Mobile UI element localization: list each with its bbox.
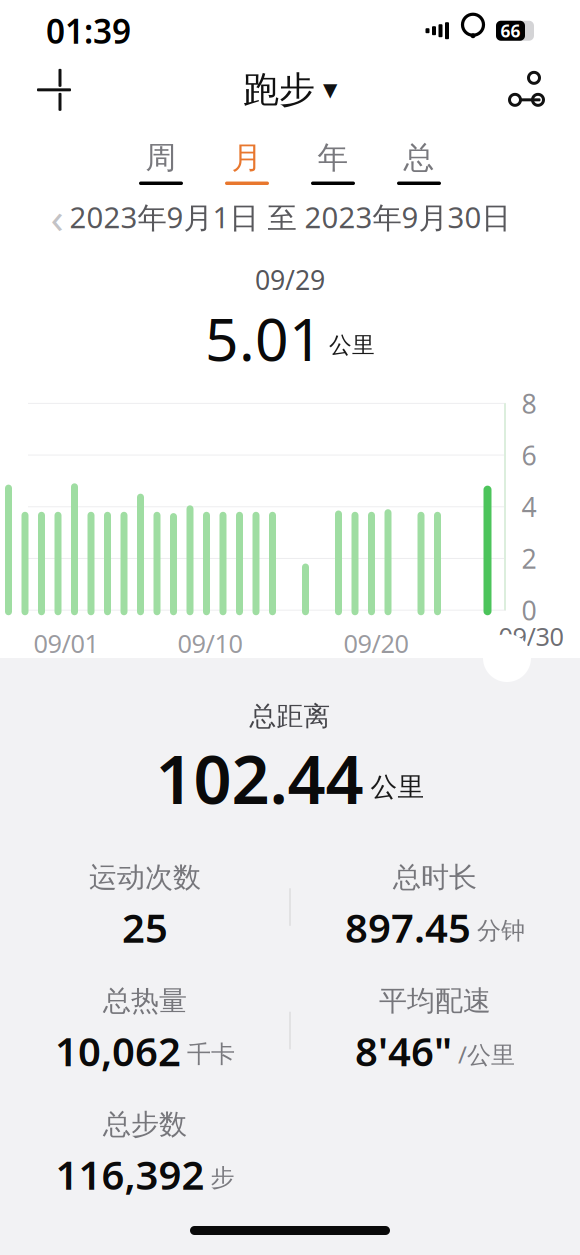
staticText: 平均配速: [379, 984, 491, 1018]
staticText: 09/10: [177, 626, 242, 660]
staticText: 总: [403, 139, 434, 177]
button[interactable]: 周: [118, 138, 204, 186]
staticText: 8'46": [355, 1024, 452, 1077]
staticText: 66: [500, 19, 520, 42]
staticText: 8: [521, 386, 536, 421]
staticText: 2023年9月1日 至 2023年9月30日: [69, 197, 510, 236]
staticText: 周: [145, 139, 176, 177]
button[interactable]: 年: [290, 138, 376, 186]
staticText: 6: [521, 437, 536, 473]
button[interactable]: Previous period: [34, 194, 80, 240]
staticText: 09/30: [498, 619, 563, 653]
button[interactable]: Share: [500, 65, 552, 115]
staticText: 总热量: [103, 984, 187, 1018]
staticText: 公里: [329, 331, 375, 359]
staticText: ‹: [50, 189, 63, 245]
staticText: 10,062: [55, 1024, 181, 1077]
staticText: 跑步: [243, 68, 315, 112]
staticText: 25: [122, 901, 168, 954]
button[interactable]: 月: [204, 138, 290, 186]
staticText: 01:39: [46, 9, 131, 53]
button[interactable]: 跑步: [231, 60, 349, 120]
staticText: 月: [231, 139, 262, 177]
staticText: 公里: [370, 771, 424, 803]
staticText: 千卡: [187, 1039, 235, 1069]
staticText: 总时长: [393, 860, 477, 895]
staticText: 总距离: [249, 700, 330, 733]
staticText: 0: [521, 592, 536, 628]
staticText: ▼: [323, 79, 337, 100]
staticText: 102.44: [155, 734, 363, 822]
staticText: 年: [317, 139, 348, 177]
staticText: /公里: [458, 1038, 515, 1070]
staticText: 2: [521, 541, 536, 576]
staticText: 09/20: [343, 626, 408, 660]
staticText: 09/29: [255, 262, 325, 297]
staticText: 运动次数: [89, 860, 201, 895]
staticText: 5.01: [205, 299, 323, 377]
button[interactable]: Back: [28, 67, 80, 113]
staticText: 分钟: [477, 916, 525, 945]
button[interactable]: 总: [376, 138, 462, 186]
staticText: 116,392: [55, 1148, 204, 1201]
staticText: 09/01: [33, 626, 98, 660]
staticText: 4: [521, 489, 536, 524]
staticText: 897.45: [345, 901, 471, 954]
staticText: 步: [210, 1163, 234, 1192]
staticText: 总步数: [103, 1107, 187, 1142]
